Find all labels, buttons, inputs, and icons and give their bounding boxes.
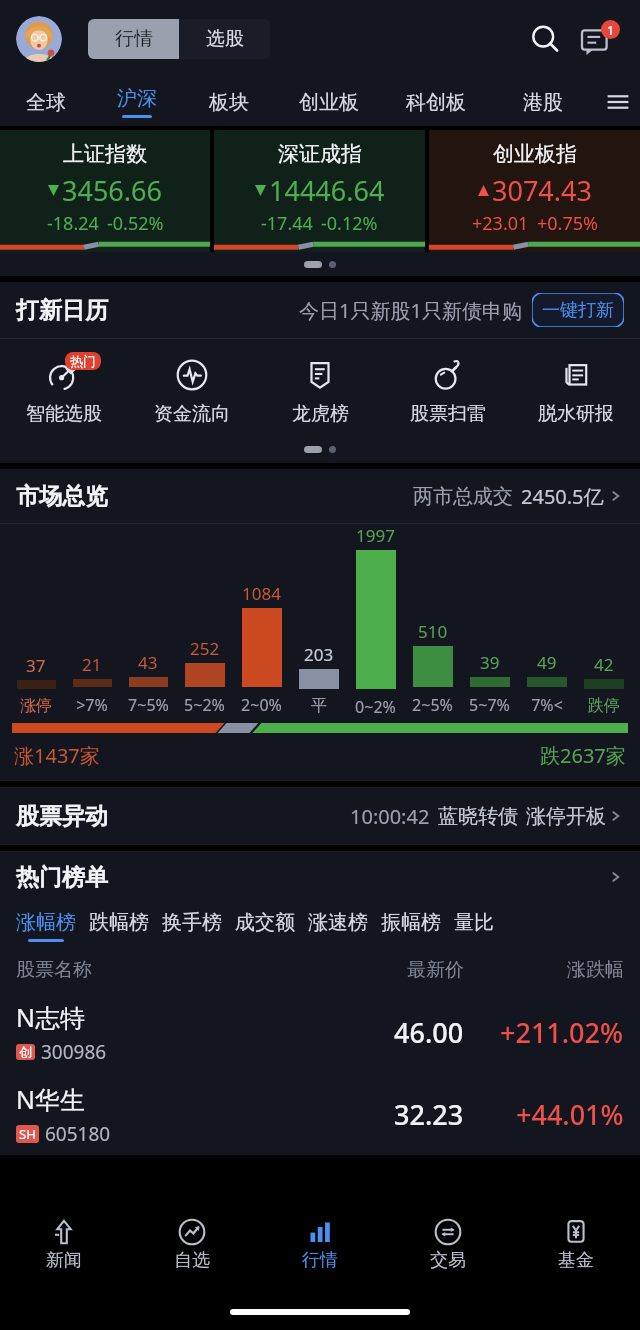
staticText: 涨1437家 xyxy=(14,742,100,769)
button[interactable]: 脱水研报 xyxy=(512,339,640,439)
staticText: 203 xyxy=(304,643,334,666)
button[interactable]: 涨速榜 xyxy=(308,910,368,942)
staticText: -0.52% xyxy=(107,211,164,236)
staticText: 换手榜 xyxy=(162,910,222,935)
staticText: 脱水研报 xyxy=(538,402,614,426)
button[interactable]: 资金流向 xyxy=(128,339,256,439)
staticText: 两市总成交 xyxy=(413,484,513,509)
button[interactable]: 上证指数 xyxy=(0,130,210,252)
button[interactable]: 全球 xyxy=(0,78,91,126)
staticText: >7% xyxy=(76,694,108,716)
staticText: 量比 xyxy=(454,910,494,935)
staticText: 0~2% xyxy=(355,696,396,718)
button[interactable]: Profile xyxy=(16,16,62,62)
button[interactable]: 换手榜 xyxy=(162,910,222,942)
staticText: 39 xyxy=(480,651,500,674)
staticText: 605180 xyxy=(45,1121,111,1147)
button[interactable]: 热门榜单 xyxy=(16,851,624,903)
staticText: 创业板指 xyxy=(493,141,577,167)
button[interactable]: 量比 xyxy=(454,910,494,942)
staticText: 涨速榜 xyxy=(308,910,368,935)
button[interactable]: 基金 xyxy=(512,1208,640,1294)
staticText: 46.00 xyxy=(394,1014,464,1051)
staticText: 跌停 xyxy=(588,696,620,716)
staticText: +211.02% xyxy=(500,1014,624,1051)
button[interactable]: 涨幅榜 xyxy=(16,910,76,942)
button[interactable]: 打新日历 xyxy=(16,282,624,338)
staticText: 49 xyxy=(537,651,557,674)
button[interactable]: 热门 xyxy=(0,339,128,439)
button[interactable]: 成交额 xyxy=(235,910,295,942)
button[interactable]: Search xyxy=(522,16,568,62)
button[interactable]: 龙虎榜 xyxy=(256,339,384,439)
staticText: 振幅榜 xyxy=(381,910,441,935)
staticText: 最新价 xyxy=(407,958,464,982)
staticText: 10:00:42 xyxy=(350,803,430,830)
button[interactable]: 创业板 xyxy=(275,78,382,126)
button[interactable]: 股票异动 xyxy=(16,787,624,845)
button[interactable]: N志特 xyxy=(16,991,624,1073)
staticText: 一键打新 xyxy=(542,299,614,322)
staticText: 3074.43 xyxy=(492,172,592,209)
button[interactable]: 跌幅榜 xyxy=(89,910,149,942)
staticText: 上证指数 xyxy=(63,141,147,167)
staticText: +23.01 xyxy=(472,211,529,236)
staticText: 510 xyxy=(418,620,448,643)
staticText: 交易 xyxy=(430,1249,466,1272)
button[interactable]: 沪深 xyxy=(91,78,183,126)
button[interactable]: 自选 xyxy=(128,1208,256,1294)
staticText: 创业板 xyxy=(299,90,359,115)
button[interactable]: More tabs xyxy=(596,78,640,126)
staticText: 行情 xyxy=(115,27,153,51)
staticText: 2~0% xyxy=(241,694,282,716)
staticText: 科创板 xyxy=(406,90,466,115)
button[interactable]: 交易 xyxy=(384,1208,512,1294)
staticText: 深证成指 xyxy=(278,141,362,167)
staticText: 5~7% xyxy=(469,694,510,716)
button[interactable]: 一键打新 xyxy=(542,293,614,327)
staticText: 涨停开板 xyxy=(526,804,606,829)
staticText: 基金 xyxy=(558,1249,594,1272)
staticText: 成交额 xyxy=(235,910,295,935)
button[interactable]: 科创板 xyxy=(382,78,489,126)
staticText: 42 xyxy=(594,653,614,676)
staticText: 创 xyxy=(19,1044,32,1060)
staticText: 蓝晓转债 xyxy=(438,804,518,829)
staticText: 7~5% xyxy=(128,694,169,716)
staticText: 21 xyxy=(82,653,102,676)
staticText: 1997 xyxy=(356,524,395,547)
staticText: N志特 xyxy=(16,1000,86,1034)
staticText: 新闻 xyxy=(46,1249,82,1272)
button[interactable]: Messages xyxy=(578,16,624,62)
staticText: 选股 xyxy=(206,27,244,51)
staticText: N华生 xyxy=(16,1082,86,1116)
button[interactable]: 振幅榜 xyxy=(381,910,441,942)
staticText: 热门 xyxy=(70,353,96,369)
button[interactable]: 港股 xyxy=(489,78,596,126)
staticText: 37 xyxy=(26,654,46,677)
staticText: 1084 xyxy=(242,582,281,605)
staticText: 5~2% xyxy=(184,694,225,716)
staticText: 2~5% xyxy=(412,694,453,716)
button[interactable]: N华生 xyxy=(16,1073,624,1155)
staticText: 资金流向 xyxy=(154,402,230,426)
staticText: 涨停 xyxy=(20,696,52,716)
button[interactable]: 深证成指 xyxy=(214,130,425,252)
staticText: +0.75% xyxy=(537,211,598,236)
staticText: SH xyxy=(19,1125,36,1143)
button[interactable]: 行情 xyxy=(256,1208,384,1294)
staticText: 打新日历 xyxy=(16,296,108,325)
button[interactable]: 市场总览 xyxy=(16,469,624,523)
button[interactable]: 行情 xyxy=(88,19,179,59)
staticText: 1 xyxy=(607,22,614,38)
button[interactable]: 创业板指 xyxy=(429,130,640,252)
button[interactable]: 选股 xyxy=(179,19,270,59)
button[interactable]: 板块 xyxy=(183,78,275,126)
staticText: 股票异动 xyxy=(16,802,108,831)
button[interactable]: 新闻 xyxy=(0,1208,128,1294)
staticText: 行情 xyxy=(302,1249,338,1272)
staticText: 全球 xyxy=(26,90,66,115)
button[interactable]: 股票扫雷 xyxy=(384,339,512,439)
staticText: 涨幅榜 xyxy=(16,910,76,935)
staticText: 2450.5亿 xyxy=(521,483,604,510)
